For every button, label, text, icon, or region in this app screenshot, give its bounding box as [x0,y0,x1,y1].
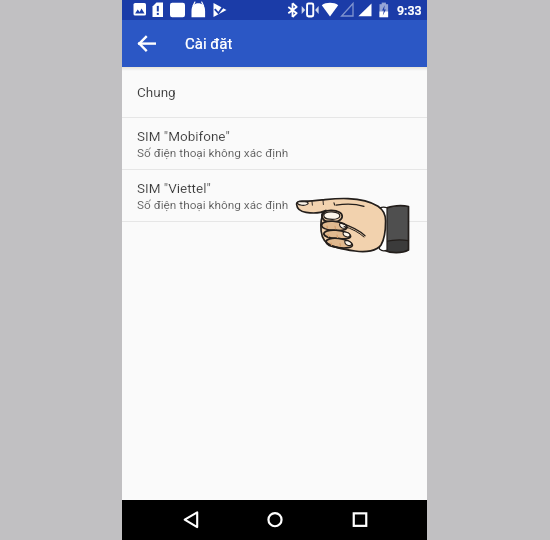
button[interactable]: Back [171,500,211,540]
staticText: Số điện thoại không xác định [137,146,289,160]
staticText: 9:33 [397,3,422,18]
staticText: Số điện thoại không xác định [137,198,289,212]
button[interactable]: SIM "Viettel" [122,170,427,221]
button[interactable]: Recent apps [340,500,380,540]
button[interactable]: Chung [122,67,427,117]
button[interactable]: Home [255,500,295,540]
staticText: Chung [137,84,176,100]
staticText: SIM "Viettel" [137,180,211,196]
button[interactable]: SIM "Mobifone" [122,118,427,169]
staticText: Cài đặt [185,35,233,53]
button[interactable]: Back [128,25,165,62]
staticText: SIM "Mobifone" [137,128,230,144]
